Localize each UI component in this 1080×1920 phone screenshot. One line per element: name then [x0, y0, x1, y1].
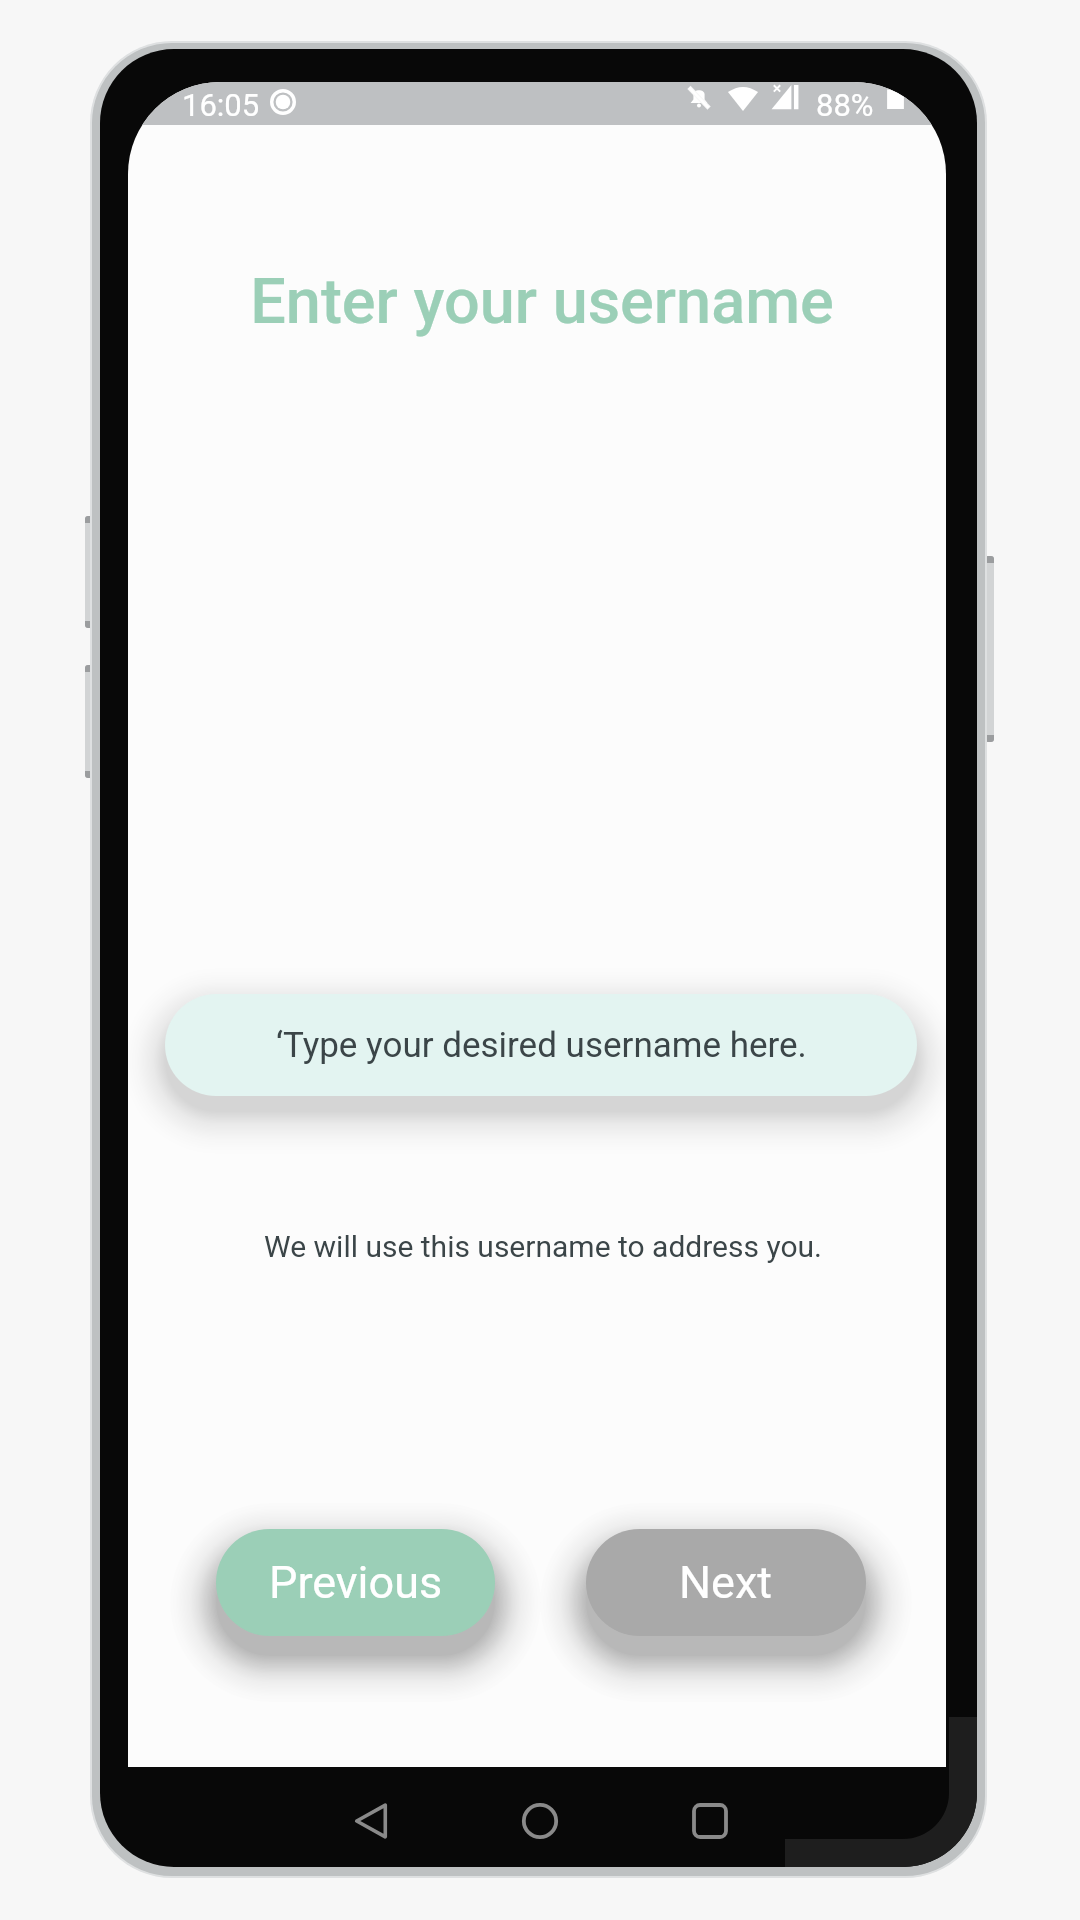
staticText: We will use this username to address you… [134, 1229, 946, 1264]
staticText: ‘Type your desired username here. [276, 1025, 807, 1066]
button[interactable]: Previous [216, 1529, 495, 1636]
staticText: Next [679, 1556, 773, 1609]
button[interactable]: Home [510, 1791, 570, 1851]
staticText: Previous [269, 1556, 443, 1609]
button[interactable]: Next [586, 1529, 866, 1636]
button[interactable]: Back [341, 1791, 401, 1851]
staticText: 16:05 [182, 87, 260, 123]
button[interactable]: Recent apps [680, 1791, 740, 1851]
staticText: Enter your username [133, 265, 946, 339]
staticText: 88% [816, 87, 874, 123]
button[interactable]: ‘Type your desired username here. [165, 994, 917, 1096]
